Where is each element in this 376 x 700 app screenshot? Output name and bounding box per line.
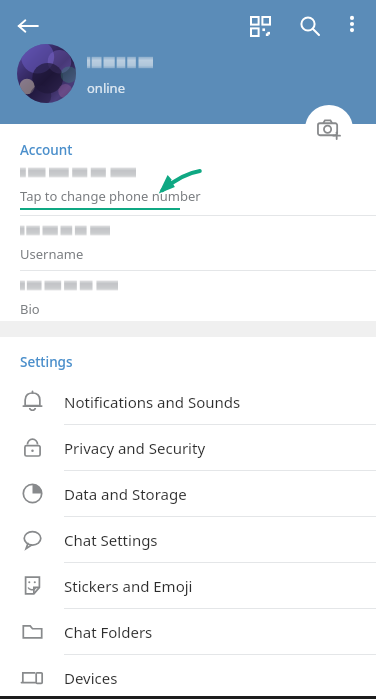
button[interactable]: Change profile photo (305, 105, 353, 153)
staticText: Chat Settings (64, 530, 158, 550)
button[interactable]: QR code (238, 4, 282, 48)
button[interactable]: Search (288, 4, 332, 48)
staticText: Username (20, 245, 84, 263)
button[interactable]: Data and Storage (0, 471, 376, 516)
button[interactable]: More options (332, 4, 372, 44)
staticText: Devices (64, 668, 118, 688)
button[interactable]: Chat Settings (0, 517, 376, 562)
button[interactable]: Chat Folders (0, 609, 376, 654)
button[interactable]: Tap to change phone number (0, 159, 376, 215)
staticText: Settings (20, 353, 73, 371)
button[interactable]: Bio (0, 271, 376, 321)
button[interactable]: Notifications and Sounds (0, 379, 376, 424)
staticText: Bio (20, 300, 40, 318)
button[interactable]: Profile photo (17, 44, 76, 103)
staticText: Stickers and Emoji (64, 576, 193, 596)
staticText: Data and Storage (64, 484, 187, 504)
button[interactable]: Back (6, 4, 50, 48)
staticText: Account (20, 141, 73, 159)
staticText: Privacy and Security (64, 438, 206, 458)
staticText: Tap to change phone number (20, 187, 201, 205)
staticText: online (87, 79, 125, 97)
button[interactable]: Devices (0, 655, 376, 700)
staticText: Chat Folders (64, 622, 153, 642)
button[interactable]: Privacy and Security (0, 425, 376, 470)
staticText: Notifications and Sounds (64, 392, 241, 412)
button[interactable]: Stickers and Emoji (0, 563, 376, 608)
button[interactable]: Username (0, 216, 376, 270)
